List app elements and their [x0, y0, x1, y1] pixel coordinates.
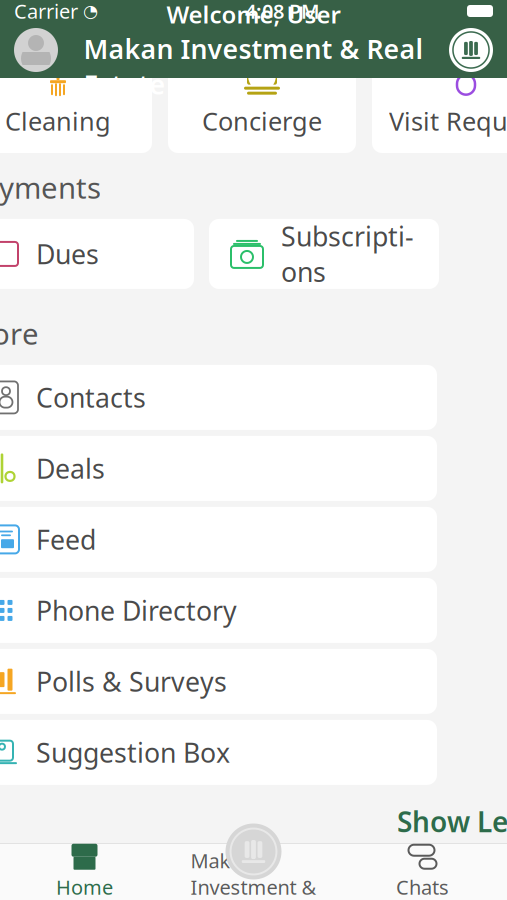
staticText: Makan Investment & Real Estate	[83, 31, 423, 102]
button[interactable]: Concierge	[168, 45, 356, 153]
staticText: Cleaning	[5, 104, 111, 138]
staticText: Home	[56, 874, 113, 900]
button[interactable]: Cleaning	[0, 45, 152, 153]
button[interactable]: Feed	[0, 507, 437, 572]
staticText: Subscriptions	[281, 218, 414, 289]
button[interactable]: Show Less	[397, 795, 507, 848]
staticText: Concierge	[202, 104, 322, 138]
staticText: 4:08 PM	[245, 0, 320, 24]
staticText: Chats	[396, 874, 449, 900]
staticText: ◔	[83, 1, 98, 21]
button[interactable]: Deals	[0, 436, 437, 501]
staticText: Contacts	[36, 380, 146, 415]
staticText: Show Less	[397, 803, 507, 840]
button[interactable]: Subscriptions	[209, 219, 439, 289]
staticText: Makan Investment & Rea...	[190, 847, 316, 900]
staticText: Carrier	[14, 0, 78, 24]
button[interactable]: Phone Directory	[0, 578, 437, 643]
button[interactable]: Home	[0, 844, 169, 900]
staticText: Polls & Surveys	[36, 664, 227, 699]
button[interactable]: Suggestion Box	[0, 720, 437, 785]
staticText: Phone Directory	[36, 593, 237, 628]
button[interactable]: Visit Request	[372, 45, 507, 153]
staticText: Feed	[36, 522, 96, 557]
button[interactable]: Profile	[14, 28, 58, 72]
staticText: Dues	[36, 236, 99, 272]
button[interactable]: Makan Investment & Rea...	[169, 844, 338, 900]
staticText: Deals	[36, 451, 105, 486]
button[interactable]: Chats	[338, 844, 507, 900]
button[interactable]: Company logo	[449, 28, 493, 72]
button[interactable]: Polls & Surveys	[0, 649, 437, 714]
staticText: More	[0, 314, 39, 353]
staticText: Visit Request	[389, 104, 507, 138]
button[interactable]: Dues	[0, 219, 194, 289]
staticText: Suggestion Box	[36, 735, 230, 770]
button[interactable]: Contacts	[0, 365, 437, 430]
staticText: Welcome, User	[166, 0, 340, 30]
staticText: Payments	[0, 168, 101, 207]
